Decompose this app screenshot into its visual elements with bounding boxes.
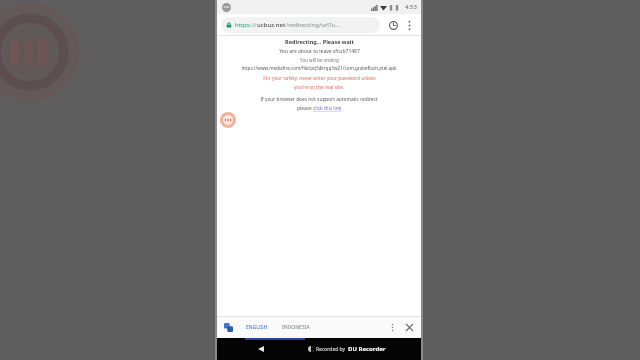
button[interactable]: INDONESIA <box>279 322 313 333</box>
staticText: If your browser does not support automat… <box>260 96 378 103</box>
staticText: // <box>252 21 257 29</box>
staticText: Redirecting... Please wait <box>285 38 354 45</box>
staticText: /redirecting/url?u... <box>286 21 341 29</box>
staticText: ucbuz.net <box>257 21 286 29</box>
staticText: you're on the real site. <box>294 84 344 91</box>
staticText: ENGLISH <box>246 324 268 331</box>
staticText: https://www.mediafire.com/file/pq5dkrqq3… <box>218 65 420 71</box>
staticText: INDONESIA <box>282 324 310 331</box>
staticText: For your safety, never enter your passwo… <box>263 75 376 82</box>
staticText: You will be visiting <box>300 57 339 63</box>
button[interactable]: Translate options <box>385 320 399 334</box>
staticText: click this link <box>313 105 342 112</box>
staticText: Recorded by <box>316 346 346 353</box>
button[interactable]: Back <box>253 341 269 357</box>
staticText: You are about to leave sfcub71487 <box>279 48 360 55</box>
button[interactable]: click this link <box>313 105 342 112</box>
staticText: please <box>297 105 313 112</box>
staticText: 4:53 <box>405 3 417 11</box>
button[interactable]: Page info <box>385 17 401 33</box>
button[interactable]: Translate <box>222 321 234 333</box>
button[interactable]: https: <box>221 17 380 33</box>
button[interactable]: More options <box>401 17 417 33</box>
button[interactable]: ENGLISH <box>243 322 271 333</box>
staticText: https: <box>235 21 252 29</box>
staticText: DU Recorder <box>348 345 386 353</box>
button[interactable]: Close <box>402 320 416 334</box>
